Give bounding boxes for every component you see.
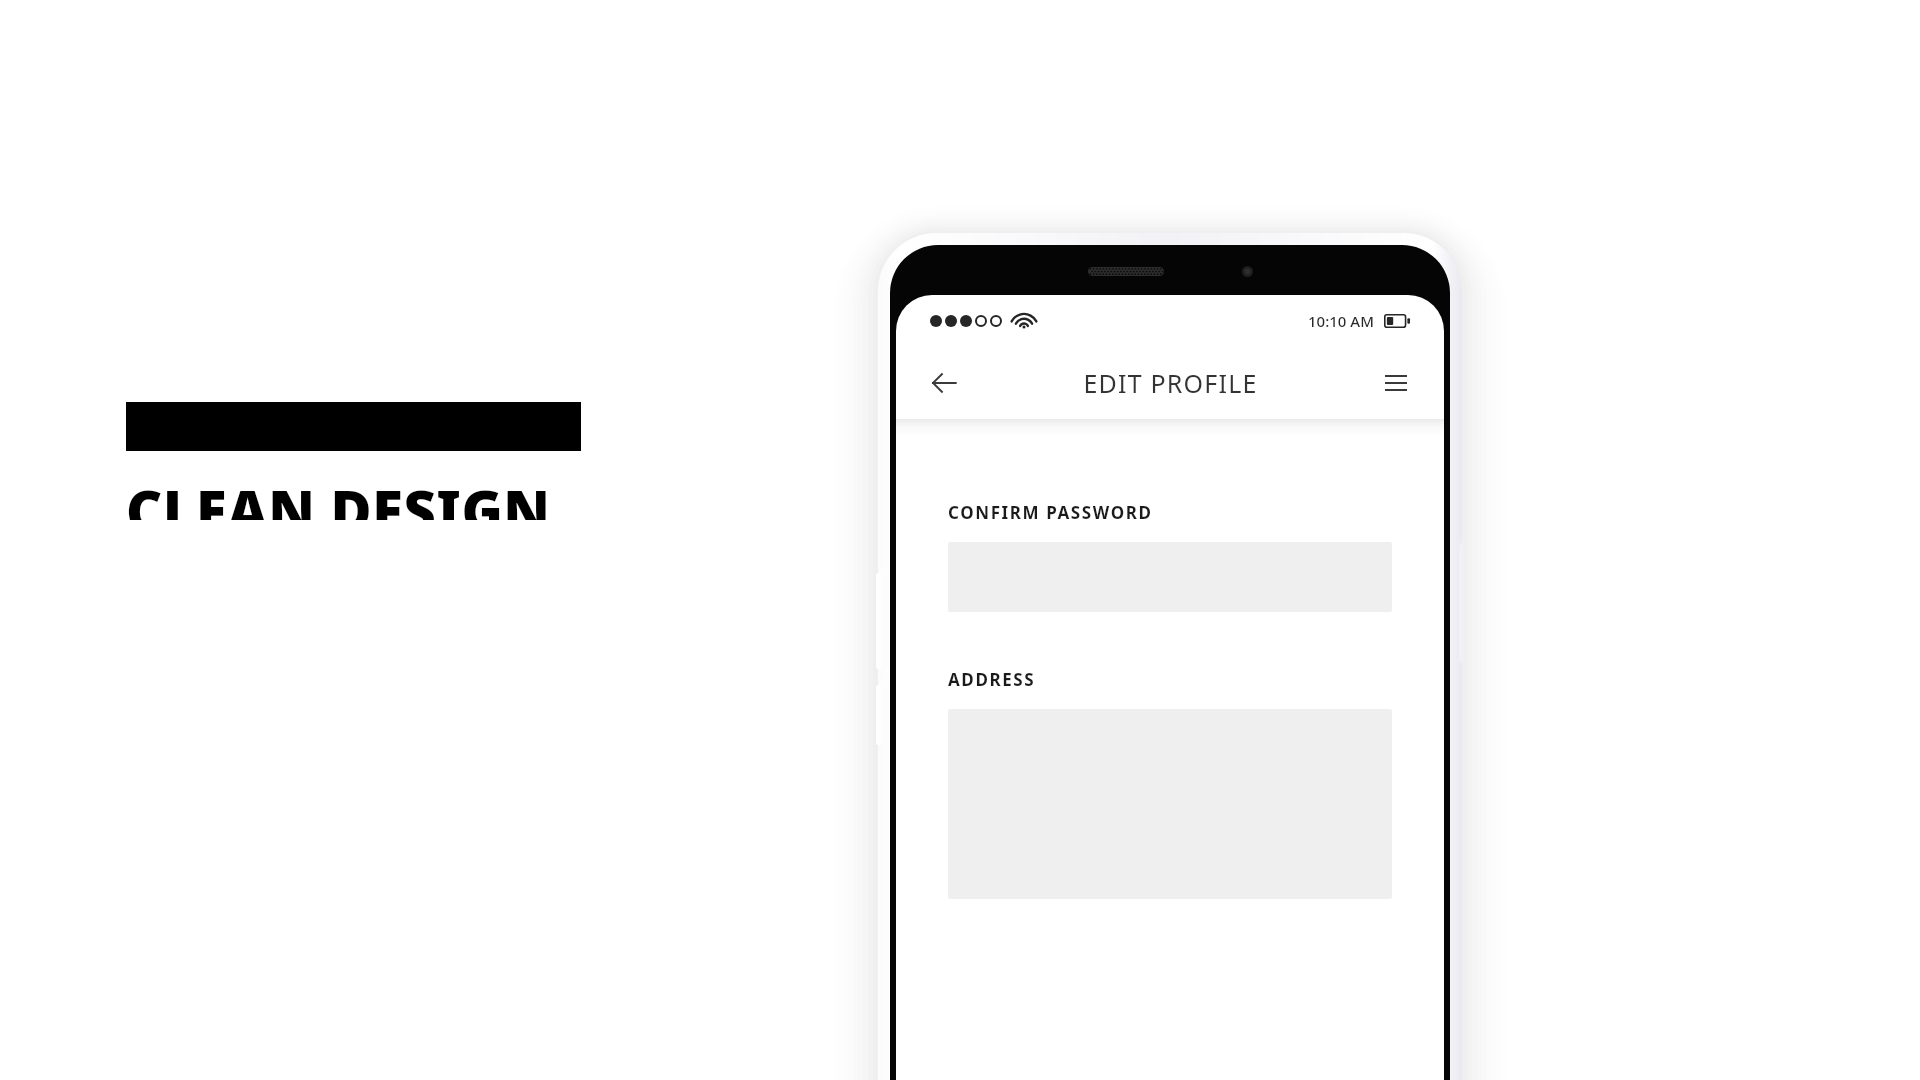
button[interactable]: Back (922, 361, 966, 405)
staticText: CONFIRM PASSWORD (948, 501, 1153, 524)
staticText: EDIT PROFILE (1083, 366, 1258, 400)
staticText: CLEAN DESIGN (126, 478, 551, 520)
staticText: ADDRESS (948, 668, 1036, 691)
staticText: 10:10 AM (1308, 311, 1374, 331)
button[interactable]: Menu (1374, 361, 1418, 405)
